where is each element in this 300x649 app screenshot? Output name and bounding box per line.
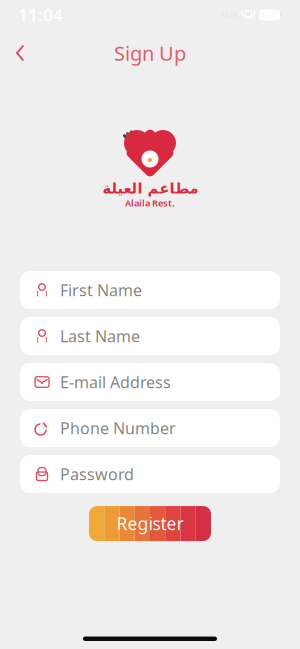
staticText: First Name [60, 279, 142, 301]
staticText: E-mail Address [60, 371, 171, 393]
button[interactable]: Register [89, 506, 211, 541]
staticText: Password [60, 463, 134, 485]
staticText: Register [116, 512, 183, 535]
staticText: Phone Number [60, 417, 176, 439]
button[interactable]: Last Name [20, 317, 280, 355]
staticText: Last Name [60, 325, 140, 347]
staticText: مطاعم العيلة [102, 180, 198, 197]
staticText: Sign Up [114, 40, 186, 66]
staticText: Alaila Rest. [125, 197, 175, 209]
button[interactable]: Password [20, 455, 280, 493]
button[interactable]: Phone Number [20, 409, 280, 447]
staticText: 11:04 [18, 3, 63, 26]
button[interactable]: Back [0, 36, 40, 70]
button[interactable]: First Name [20, 271, 280, 309]
button[interactable]: E-mail Address [20, 363, 280, 401]
